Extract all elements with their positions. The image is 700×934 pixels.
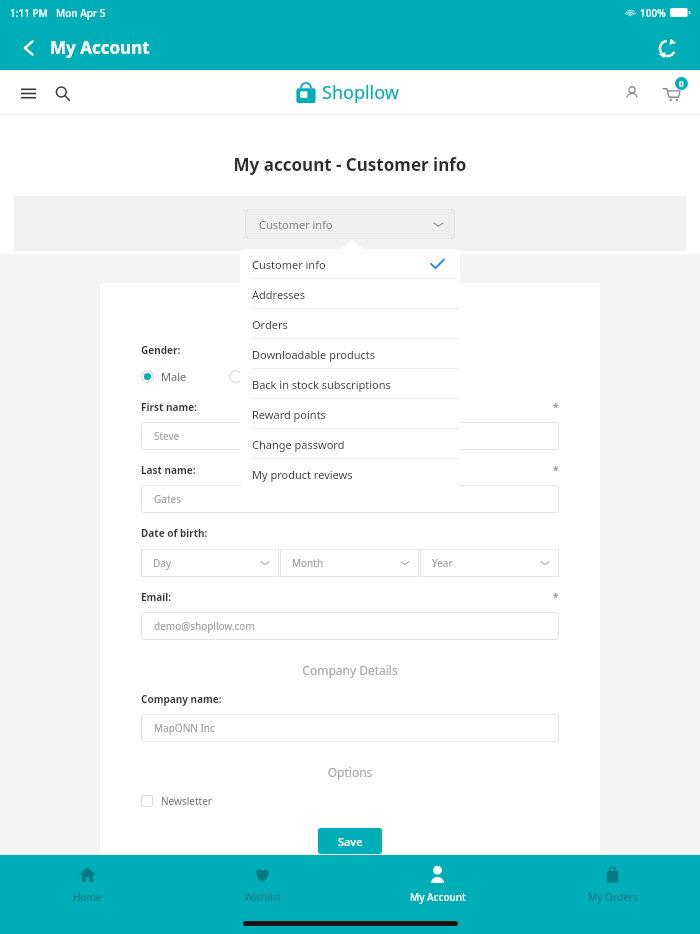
staticText: 1:11 PM <box>10 6 48 20</box>
staticText: Last name: <box>141 463 196 477</box>
staticText: Change password <box>252 437 345 452</box>
staticText: Male <box>161 369 187 384</box>
staticText: My product reviews <box>252 467 353 482</box>
button[interactable]: Addresses <box>240 279 460 309</box>
button[interactable]: Month <box>280 549 419 577</box>
staticText: 0 <box>679 78 684 89</box>
staticText: Steve <box>154 429 180 443</box>
button[interactable]: My Account <box>350 863 525 904</box>
staticText: Mon Apr 5 <box>56 6 106 20</box>
staticText: Email: <box>141 590 172 604</box>
button[interactable]: Reward points <box>240 399 460 429</box>
staticText: Month <box>292 556 324 570</box>
staticText: Female <box>249 369 287 384</box>
staticText: Newsletter <box>161 794 212 808</box>
staticText: First name: <box>141 400 197 414</box>
staticText: Save <box>338 834 363 849</box>
staticText: Company name: <box>141 692 222 706</box>
button[interactable]: Back in stock subscriptions <box>240 369 460 399</box>
staticText: Gates <box>154 492 181 506</box>
button[interactable]: Refresh <box>650 31 684 65</box>
staticText: Day <box>153 556 172 570</box>
button[interactable]: My Orders <box>525 863 700 904</box>
button[interactable]: Steve <box>141 422 559 450</box>
staticText: * <box>553 590 559 604</box>
button[interactable]: Female <box>229 369 287 384</box>
staticText: Shopllow <box>322 80 399 105</box>
staticText: My Account <box>410 890 466 904</box>
button[interactable]: Newsletter <box>141 794 212 808</box>
staticText: * <box>553 463 559 477</box>
staticText: Customer info <box>252 257 326 272</box>
button[interactable]: Orders <box>240 309 460 339</box>
button[interactable]: Change password <box>240 429 460 459</box>
staticText: * <box>553 400 559 414</box>
staticText: Downloadable products <box>252 347 376 362</box>
staticText: Options <box>141 764 559 780</box>
button[interactable]: Wishlist <box>175 863 350 904</box>
button[interactable]: Search <box>48 79 76 107</box>
staticText: Date of birth: <box>141 526 208 540</box>
button[interactable]: demo@shopllow.com <box>141 612 559 640</box>
button[interactable]: Back <box>14 33 44 63</box>
staticText: Home <box>73 890 102 904</box>
button[interactable]: Customer info <box>245 209 455 239</box>
staticText: Gender: <box>141 343 181 357</box>
button[interactable]: Male <box>141 369 187 384</box>
staticText: Reward points <box>252 407 326 422</box>
button[interactable]: Year <box>420 549 559 577</box>
staticText: Orders <box>252 317 288 332</box>
button[interactable]: Day <box>141 549 279 577</box>
staticText: Back in stock subscriptions <box>252 377 391 392</box>
staticText: Customer info <box>259 217 333 232</box>
button[interactable]: Gates <box>141 485 559 513</box>
staticText: Addresses <box>252 287 306 302</box>
staticText: Company Details <box>141 662 559 678</box>
button[interactable]: MapONN Inc <box>141 714 559 742</box>
staticText: My Account <box>50 36 150 59</box>
button[interactable]: Home <box>0 863 175 904</box>
button[interactable]: Menu <box>14 79 42 107</box>
button[interactable]: Customer info <box>240 249 460 279</box>
button[interactable]: My product reviews <box>240 459 460 489</box>
staticText: Year <box>432 556 453 570</box>
staticText: My Orders <box>588 890 638 904</box>
staticText: demo@shopllow.com <box>154 619 255 633</box>
staticText: MapONN Inc <box>154 721 215 735</box>
button[interactable]: Cart <box>656 78 686 108</box>
button[interactable]: Save <box>318 828 382 854</box>
staticText: Wishlist <box>244 890 282 904</box>
button[interactable]: Account <box>618 79 646 107</box>
staticText: My account - Customer info <box>0 153 700 176</box>
button[interactable]: Downloadable products <box>240 339 460 369</box>
button[interactable]: Shopllow <box>294 80 399 105</box>
staticText: 100% <box>640 6 666 20</box>
